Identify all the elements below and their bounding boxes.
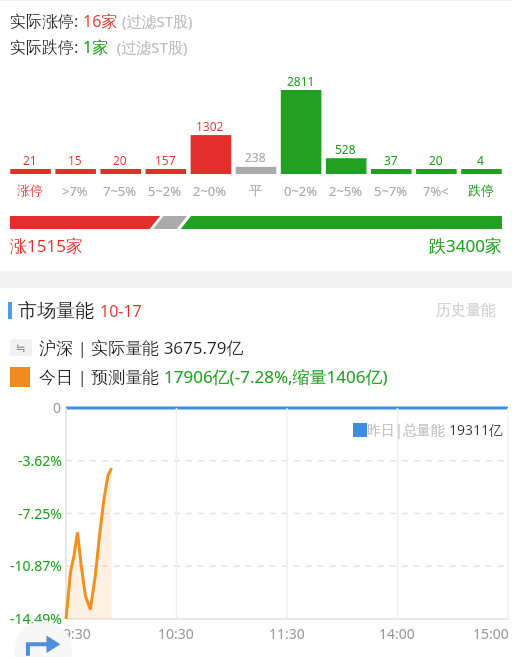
button[interactable]: 实际涨停: [10,10,512,32]
staticText: 37 [384,152,398,168]
staticText: -10.87% [10,556,62,575]
staticText: 15 [68,152,82,168]
staticText: 5~7% [374,182,408,200]
staticText: 14:00 [379,624,415,643]
staticText: 涨停 [17,182,43,198]
staticText: 昨日|总量能 [367,420,449,439]
staticText: -3.62% [18,451,62,470]
staticText: 平 [249,182,262,198]
staticText: 跌3400家 [429,234,502,257]
button[interactable]: ≒ [10,336,512,359]
staticText: -7.25% [18,504,62,523]
staticText: 17906亿(-7.28%,缩量1406亿) [164,365,388,388]
staticText: 11:30 [269,624,305,643]
staticText: (过滤ST股) [118,11,193,31]
staticText: 沪深 | 实际量能 3675.79亿 [39,336,244,359]
staticText: 238 [245,149,266,165]
button[interactable]: Share [14,621,72,657]
button[interactable]: 历史量能 [432,297,500,324]
staticText: 实际涨停: [10,10,83,32]
button[interactable]: 实际跌停: [10,36,512,58]
staticText: 涨1515家 [10,234,83,257]
staticText: 15:00 [473,624,509,643]
staticText: 市场量能 [18,299,94,323]
staticText: 157 [155,152,176,168]
staticText: 1家 [83,36,109,58]
staticText: -14.49% [10,609,62,628]
staticText: 5~2% [148,182,182,200]
staticText: 10-17 [100,300,142,322]
staticText: 21 [23,152,37,168]
staticText: 4 [477,152,484,168]
staticText: 7%< [423,182,449,200]
staticText: 20 [429,152,443,168]
staticText: 今日 | 预测量能 [39,365,164,388]
staticText: 7~5% [103,182,137,200]
staticText: 0~2% [284,182,318,200]
staticText: 10:30 [158,624,194,643]
staticText: (过滤ST股) [109,37,188,57]
staticText: 实际跌停: [10,36,83,58]
staticText: 19311亿 [449,420,504,439]
staticText: 2811 [287,73,315,89]
staticText: 20 [113,152,127,168]
button[interactable]: 今日 | 预测量能 [10,365,512,388]
staticText: 0 [53,398,62,417]
staticText: 2~0% [193,182,227,200]
staticText: 2~5% [329,182,363,200]
staticText: 528 [335,141,356,157]
staticText: 1302 [196,118,224,134]
staticText: >7% [62,182,88,200]
staticText: 09:30 [55,624,91,643]
staticText: ≒ [16,341,27,355]
staticText: 跌停 [468,182,494,198]
staticText: 历史量能 [436,301,496,320]
staticText: 16家 [83,10,118,32]
